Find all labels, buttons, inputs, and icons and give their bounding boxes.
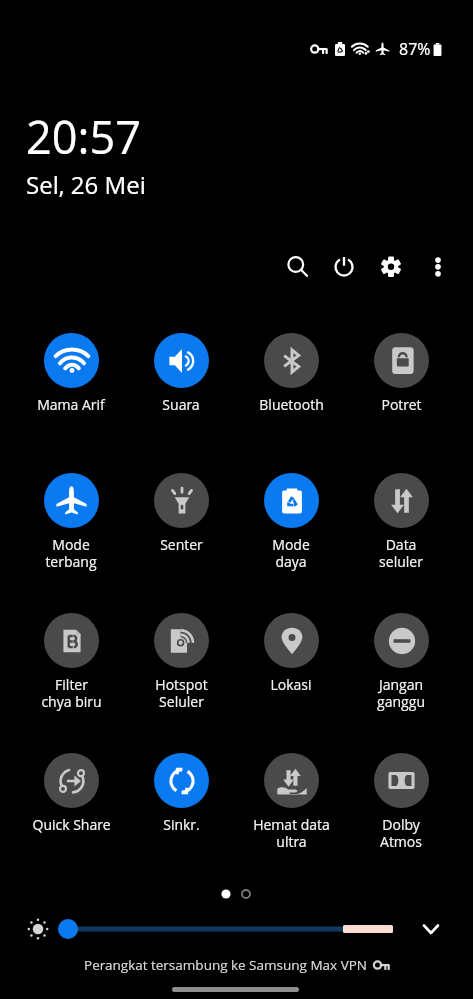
- button[interactable]: Power: [321, 243, 367, 289]
- staticText: Hotspot Seluler: [155, 675, 208, 711]
- staticText: Potret: [381, 395, 422, 414]
- button[interactable]: Search: [273, 243, 319, 289]
- button[interactable]: Jangan ganggu: [346, 613, 456, 711]
- staticText: 20:57: [26, 106, 141, 167]
- button[interactable]: Mode terbang: [16, 473, 126, 571]
- button[interactable]: Sinkr.: [126, 753, 236, 834]
- staticText: Filter chya biru: [41, 675, 102, 711]
- staticText: Jangan ganggu: [377, 675, 425, 711]
- staticText: Lokasi: [270, 675, 312, 694]
- staticText: Suara: [162, 395, 200, 414]
- button[interactable]: Suara: [126, 333, 236, 414]
- staticText: Hemat data ultra: [253, 815, 330, 851]
- button[interactable]: Data seluler: [346, 473, 456, 571]
- button[interactable]: Bluetooth: [236, 333, 346, 414]
- staticText: Sinkr.: [163, 815, 200, 834]
- button[interactable]: More options: [415, 243, 461, 289]
- button[interactable]: Settings: [368, 243, 414, 289]
- staticText: Mama Arif: [37, 395, 105, 414]
- button[interactable]: Potret: [346, 333, 456, 414]
- staticText: Data seluler: [379, 535, 423, 571]
- button[interactable]: Mama Arif: [16, 333, 126, 414]
- staticText: Perangkat tersambung ke Samsung Max VPN: [84, 956, 368, 974]
- button[interactable]: Filter chya biru: [16, 613, 126, 711]
- staticText: Sel, 26 Mei: [26, 168, 146, 201]
- button[interactable]: Lokasi: [236, 613, 346, 694]
- button[interactable]: Hemat data ultra: [236, 753, 346, 851]
- staticText: Dolby Atmos: [380, 815, 422, 851]
- staticText: Mode daya: [272, 535, 310, 571]
- staticText: 87%: [399, 38, 431, 60]
- button[interactable]: Dolby Atmos: [346, 753, 456, 851]
- staticText: Senter: [160, 535, 203, 554]
- staticText: Quick Share: [32, 815, 111, 834]
- button[interactable]: Hotspot Seluler: [126, 613, 236, 711]
- staticText: Bluetooth: [259, 395, 324, 414]
- button[interactable]: Quick Share: [16, 753, 126, 834]
- staticText: Mode terbang: [45, 535, 97, 571]
- button[interactable]: Senter: [126, 473, 236, 554]
- button[interactable]: Mode daya: [236, 473, 346, 571]
